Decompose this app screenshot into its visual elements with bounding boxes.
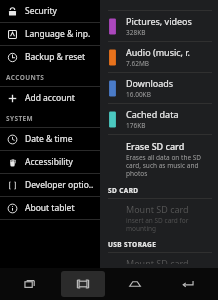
- staticText: 176KB: [126, 121, 146, 130]
- staticText: Cached data: [126, 108, 179, 120]
- staticText: Backup & reset: [25, 51, 86, 63]
- button[interactable]: Language & inp.: [0, 23, 100, 45]
- staticText: About tablet: [25, 202, 75, 214]
- button[interactable]: Date & time: [0, 128, 100, 150]
- staticText: USB STORAGE: [108, 240, 157, 249]
- staticText: Mount SD card: [126, 203, 189, 215]
- staticText: Developer optio..: [25, 179, 94, 191]
- staticText: Downloads: [126, 77, 174, 89]
- staticText: Mount SD card: [126, 257, 189, 264]
- button[interactable]: Security: [0, 0, 100, 22]
- button[interactable]: Cached data: [100, 104, 218, 134]
- staticText: Erase SD card: [126, 140, 185, 152]
- staticText: Audio (music, r.: [126, 46, 191, 58]
- staticText: Accessibility: [25, 156, 73, 168]
- staticText: Language & inp.: [25, 28, 91, 40]
- button[interactable]: Audio (music, r.: [100, 42, 218, 72]
- staticText: SD CARD: [108, 186, 139, 195]
- button[interactable]: Backup & reset: [0, 46, 100, 68]
- staticText: Date & time: [25, 133, 73, 145]
- staticText: Security: [25, 5, 57, 17]
- staticText: ACCOUNTS: [6, 73, 45, 82]
- staticText: Pictures, videos: [126, 15, 192, 27]
- staticText: Erases all data on the SD card, such as …: [126, 153, 210, 178]
- staticText: 7.62MB: [126, 59, 150, 68]
- button[interactable]: Erase SD card: [100, 135, 218, 183]
- button[interactable]: Add account: [0, 87, 100, 109]
- button[interactable]: Downloads: [100, 73, 218, 103]
- button[interactable]: About tablet: [0, 197, 100, 219]
- staticText: 328KB: [126, 28, 146, 37]
- staticText: SYSTEM: [6, 114, 34, 123]
- staticText: 16.00KB: [126, 90, 151, 99]
- button[interactable]: Home: [113, 271, 157, 297]
- button[interactable]: Screenshot: [61, 271, 105, 297]
- staticText: insert an SD card for mounting: [126, 216, 210, 233]
- button[interactable]: Developer optio..: [0, 174, 100, 196]
- button[interactable]: Pictures, videos: [100, 11, 218, 41]
- button[interactable]: Recent apps: [8, 271, 52, 297]
- button[interactable]: Back: [166, 271, 210, 297]
- staticText: Add account: [25, 92, 75, 104]
- button[interactable]: Accessibility: [0, 151, 100, 173]
